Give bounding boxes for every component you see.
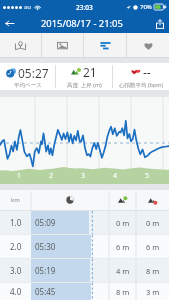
staticText: km <box>11 196 20 204</box>
staticText: 3 <box>81 171 86 181</box>
staticText: 2015/08/17 - 21:05 <box>41 17 123 30</box>
staticText: 05:19 <box>35 265 56 276</box>
staticText: 平均ペース <box>14 82 42 89</box>
staticText: 3.0 <box>10 265 22 276</box>
staticText: 1.0 <box>10 217 22 228</box>
staticText: 8 m <box>146 266 160 276</box>
button[interactable]: Statistics <box>84 33 126 57</box>
staticText: 2.0 <box>10 241 22 252</box>
button[interactable]: 4.0 <box>0 283 169 300</box>
staticText: 23:03 <box>76 3 93 12</box>
staticText: 4 m <box>116 266 130 276</box>
button[interactable]: 3.0 <box>0 259 169 282</box>
staticText: 3 m <box>146 287 160 297</box>
staticText: 21 <box>83 64 97 80</box>
button[interactable]: Map <box>0 33 41 57</box>
button[interactable]: 1.0 <box>0 211 169 234</box>
staticText: 高度 上昇 (m) <box>67 81 102 89</box>
staticText: 05:30 <box>35 241 56 252</box>
staticText: 70% <box>140 3 152 11</box>
staticText: 1 <box>17 171 22 181</box>
staticText: -- <box>143 64 151 80</box>
staticText: 05:27 <box>18 65 49 81</box>
staticText: 0 m <box>146 218 160 228</box>
staticText: 6 m <box>146 242 160 252</box>
staticText: 4.0 <box>10 286 22 297</box>
staticText: 4 <box>113 171 118 181</box>
staticText: 心拍数平均 (bpm) <box>119 81 164 89</box>
button[interactable]: 2.0 <box>0 235 169 258</box>
staticText: 8 m <box>116 287 130 297</box>
staticText: 2 <box>49 171 54 181</box>
staticText: 5 <box>145 171 150 181</box>
staticText: au <box>24 3 32 11</box>
button[interactable]: Share <box>150 14 169 33</box>
button[interactable]: Back <box>0 14 19 33</box>
staticText: 6 m <box>116 242 130 252</box>
staticText: 0 m <box>116 218 130 228</box>
staticText: 05:45 <box>35 286 56 297</box>
staticText: 05:09 <box>35 217 56 228</box>
button[interactable]: Photos <box>42 33 83 57</box>
button[interactable]: Favourite <box>127 33 169 57</box>
